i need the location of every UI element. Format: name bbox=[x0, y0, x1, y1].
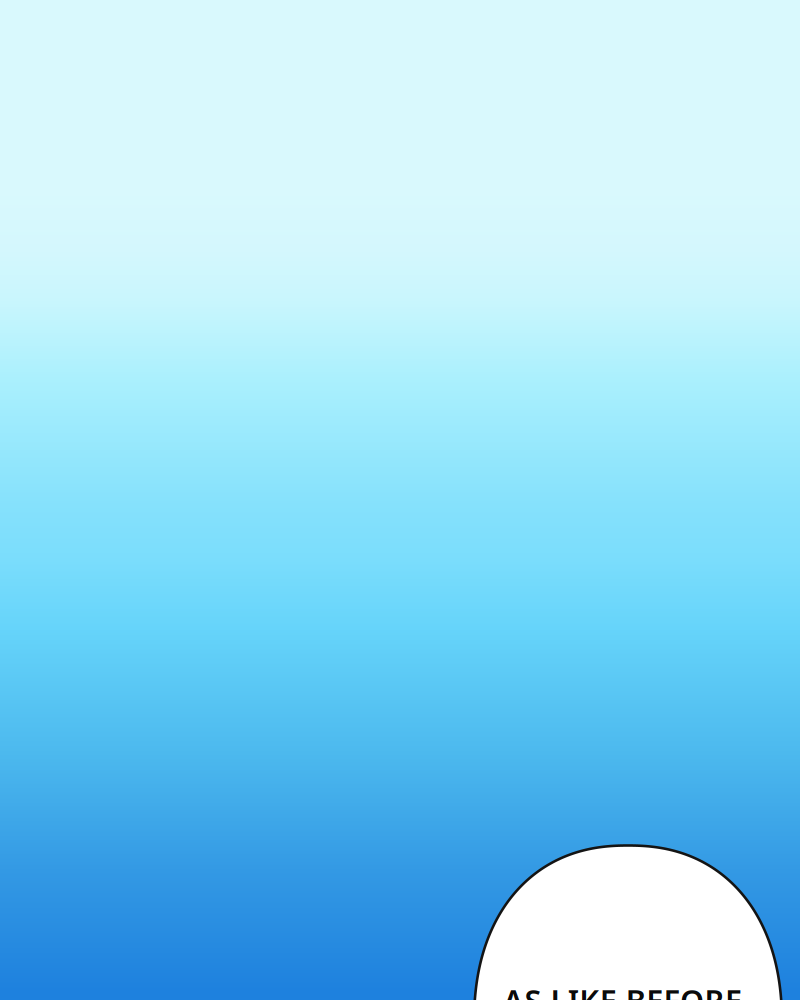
staticText: AS LIKE BEFORE bbox=[503, 980, 742, 1000]
button[interactable]: AS LIKE BEFORE bbox=[474, 845, 782, 1000]
